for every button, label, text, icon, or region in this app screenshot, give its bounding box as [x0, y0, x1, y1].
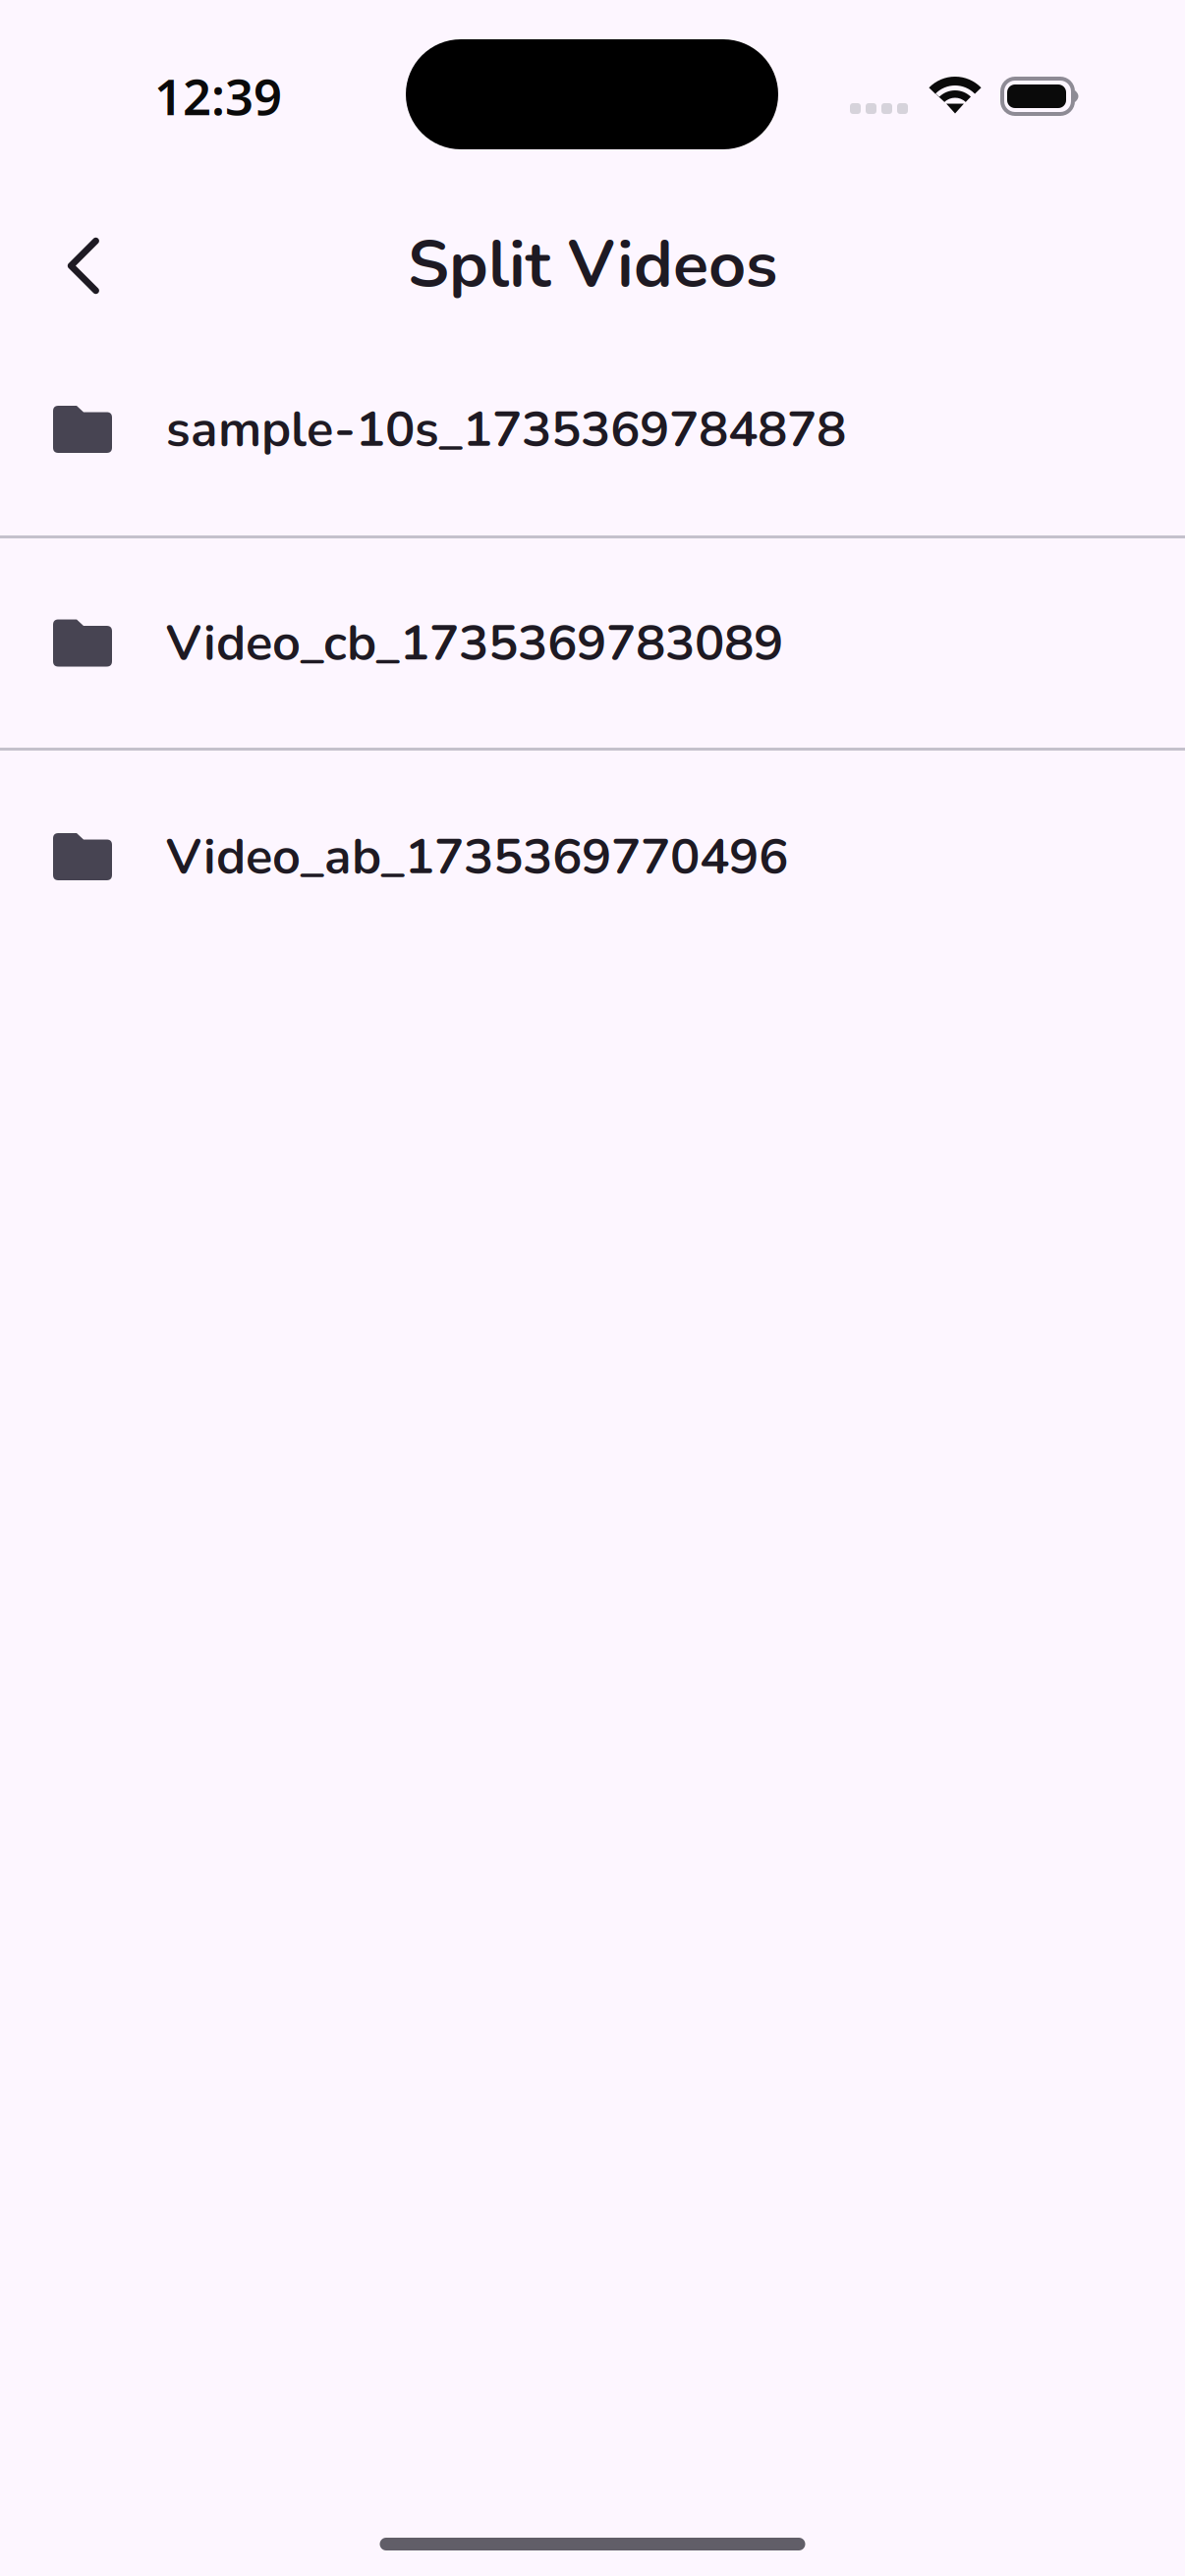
button[interactable]: sample-10s_1735369784878 [0, 323, 1185, 535]
staticText: sample-10s_1735369784878 [166, 395, 846, 463]
button[interactable]: Video_ab_1735369770496 [0, 751, 1185, 963]
staticText: Video_ab_1735369770496 [166, 823, 788, 891]
staticText: Split Videos [408, 220, 777, 309]
staticText: 12:39 [154, 63, 282, 129]
staticText: Video_cb_1735369783089 [166, 609, 783, 677]
button[interactable]: Back [0, 189, 142, 323]
button[interactable]: Video_cb_1735369783089 [0, 538, 1185, 748]
